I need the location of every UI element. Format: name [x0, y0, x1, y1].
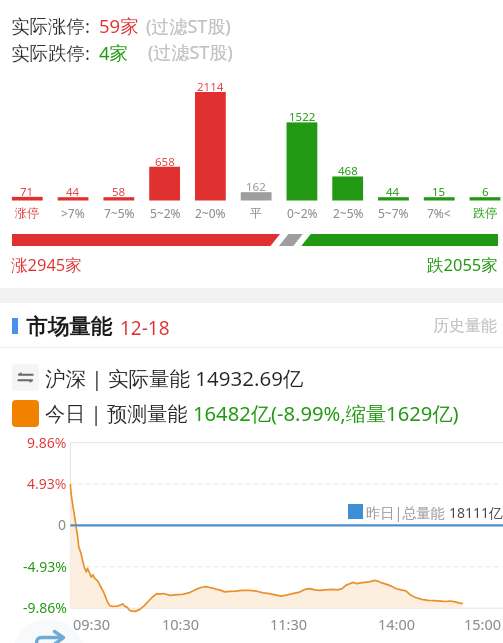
staticText: 0	[58, 515, 67, 534]
staticText: 0~2%	[287, 205, 318, 221]
staticText: (过滤ST股)	[148, 40, 233, 65]
staticText: 12-18	[120, 315, 170, 341]
staticText: 涨停	[15, 205, 39, 220]
staticText: 5~7%	[378, 205, 409, 221]
staticText: 162	[246, 179, 266, 195]
staticText: >7%	[61, 205, 85, 221]
staticText: 跌2055家	[427, 253, 498, 276]
staticText: 658	[155, 154, 175, 170]
staticText: 2~0%	[195, 205, 226, 221]
button[interactable]: Share	[12, 619, 85, 643]
staticText: 1522	[289, 109, 316, 125]
staticText: 6	[482, 184, 489, 200]
staticText: 跌停	[473, 205, 497, 220]
staticText: 实际跌停:	[11, 40, 90, 65]
staticText: 5~2%	[150, 205, 181, 221]
staticText: 71	[20, 184, 34, 200]
staticText: 9.86%	[27, 433, 67, 452]
staticText: 18111亿	[449, 503, 503, 522]
staticText: 14:00	[378, 614, 416, 634]
staticText: 7~5%	[104, 205, 135, 221]
staticText: 44	[386, 184, 400, 200]
staticText: 沪深 | 实际量能 14932.69亿	[45, 364, 304, 392]
staticText: 7%<	[427, 205, 451, 221]
staticText: 58	[112, 184, 126, 200]
staticText: 11:30	[270, 614, 308, 634]
staticText: 15:00	[464, 614, 502, 634]
staticText: 今日 | 预测量能 16482亿(-8.99%,缩量1629亿)	[45, 399, 459, 427]
staticText: (过滤ST股)	[146, 14, 231, 39]
staticText: 2~5%	[333, 205, 364, 221]
staticText: 2114	[197, 79, 224, 95]
staticText: 昨日|总量能	[366, 503, 445, 522]
staticText: 涨2945家	[11, 253, 82, 276]
staticText: 市场量能	[26, 313, 112, 340]
staticText: -9.86%	[23, 598, 67, 617]
staticText: 59家	[99, 13, 139, 38]
staticText: 10:30	[162, 614, 200, 634]
staticText: 4家	[99, 40, 129, 65]
staticText: 44	[66, 184, 80, 200]
staticText: 实际涨停:	[11, 13, 90, 38]
staticText: 4.93%	[27, 474, 67, 493]
staticText: 历史量能	[433, 316, 497, 336]
staticText: 09:30	[73, 614, 111, 634]
staticText: 平	[250, 205, 262, 220]
staticText: 468	[338, 163, 358, 179]
staticText: -4.93%	[23, 557, 67, 576]
staticText: 15	[432, 184, 446, 200]
button[interactable]: 历史量能	[433, 316, 497, 336]
